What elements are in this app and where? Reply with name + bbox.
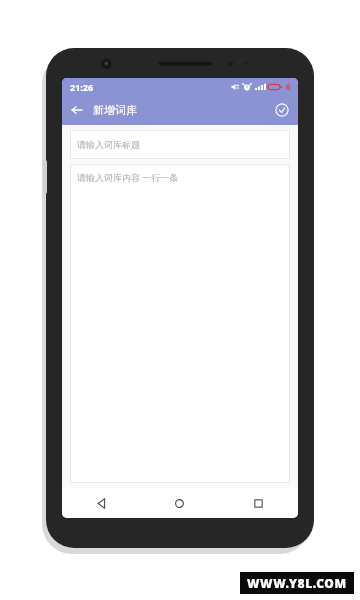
button[interactable]: Home [140,488,219,518]
button[interactable]: Confirm [271,99,293,121]
staticText: 21:26 [70,81,94,93]
button[interactable]: 请输入词库标题 [70,130,290,159]
button[interactable]: 请输入词库内容 一行一条 [70,164,290,483]
staticText: 请输入词库标题 [77,139,140,150]
button[interactable]: Back [62,488,140,518]
button[interactable]: Back [66,99,88,121]
staticText: 6 [286,81,291,92]
staticText: 新增词库 [93,103,137,117]
staticText: 请输入词库内容 一行一条 [77,171,179,183]
staticText: WWW.Y8L.COM [247,575,347,591]
button[interactable]: Recents [219,488,298,518]
